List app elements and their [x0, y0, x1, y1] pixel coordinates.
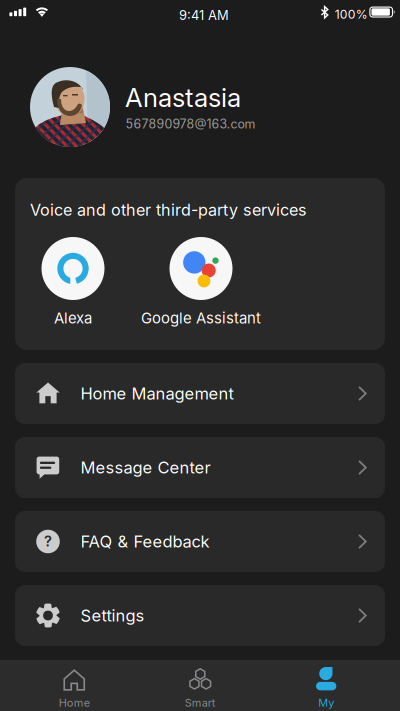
- staticText: Anastasia: [125, 82, 241, 113]
- staticText: Message Center: [80, 457, 210, 477]
- staticText: Alexa: [54, 309, 92, 327]
- staticText: FAQ & Feedback: [80, 531, 209, 551]
- button[interactable]: Google Assistant: [138, 237, 263, 327]
- staticText: 100%: [335, 7, 368, 22]
- staticText: ?: [44, 532, 52, 550]
- staticText: Settings: [80, 605, 144, 625]
- staticText: Home: [59, 696, 90, 709]
- button[interactable]: Message Center: [15, 437, 385, 498]
- button[interactable]: Smart: [137, 660, 263, 711]
- button[interactable]: Alexa: [28, 237, 118, 327]
- button[interactable]: Home Management: [15, 363, 385, 424]
- staticText: Google Assistant: [141, 309, 261, 327]
- button[interactable]: ?: [15, 511, 385, 572]
- staticText: Voice and other third-party services: [30, 200, 307, 219]
- button[interactable]: Home: [11, 660, 137, 711]
- staticText: 567890978@163.com: [125, 116, 255, 131]
- button[interactable]: My: [263, 660, 389, 711]
- staticText: 9:41 AM: [179, 7, 229, 23]
- staticText: Home Management: [80, 383, 233, 403]
- staticText: Smart: [185, 696, 216, 709]
- button[interactable]: Settings: [15, 585, 385, 646]
- staticText: My: [318, 696, 334, 709]
